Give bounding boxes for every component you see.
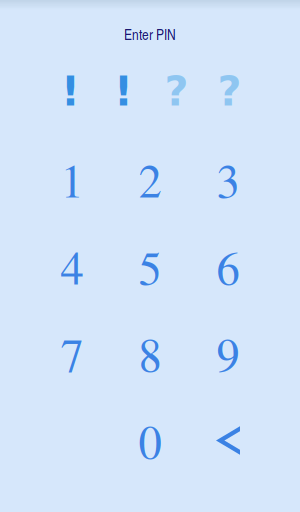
staticText: ? bbox=[217, 67, 241, 115]
button[interactable]: 9 bbox=[189, 310, 267, 397]
button[interactable]: 7 bbox=[33, 310, 111, 397]
button[interactable]: 1 bbox=[33, 136, 111, 223]
staticText: 5 bbox=[138, 235, 161, 298]
button[interactable]: 0 bbox=[111, 397, 189, 484]
staticText: ! bbox=[61, 67, 80, 115]
button[interactable]: 3 bbox=[189, 136, 267, 223]
staticText: 3 bbox=[216, 148, 239, 211]
button[interactable]: 2 bbox=[111, 136, 189, 223]
staticText: 7 bbox=[60, 322, 83, 385]
button[interactable]: 4 bbox=[33, 223, 111, 310]
staticText: 2 bbox=[138, 148, 161, 211]
staticText: 9 bbox=[216, 322, 239, 385]
staticText: 4 bbox=[60, 235, 83, 298]
button[interactable]: 8 bbox=[111, 310, 189, 397]
staticText: 0 bbox=[138, 409, 161, 472]
staticText: 1 bbox=[60, 148, 83, 211]
staticText: ? bbox=[164, 67, 188, 115]
button[interactable]: 5 bbox=[111, 223, 189, 310]
staticText: 8 bbox=[138, 322, 161, 385]
staticText: 6 bbox=[216, 235, 239, 298]
staticText: Enter PIN bbox=[124, 24, 176, 44]
button[interactable]: 6 bbox=[189, 223, 267, 310]
button[interactable]: Delete bbox=[189, 397, 267, 484]
staticText: ! bbox=[114, 67, 133, 115]
